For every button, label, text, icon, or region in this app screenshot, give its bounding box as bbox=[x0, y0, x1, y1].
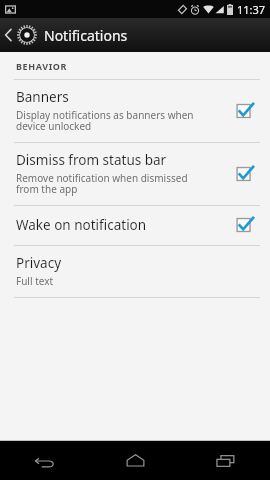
button[interactable]: Back bbox=[0, 441, 90, 480]
staticText: Banners bbox=[16, 88, 69, 106]
button[interactable]: Recent apps bbox=[180, 441, 270, 480]
staticText: Dismiss from status bar bbox=[16, 151, 167, 169]
staticText: Notifications bbox=[44, 26, 128, 45]
staticText: 11:37 bbox=[237, 2, 266, 17]
button[interactable]: Dismiss from status bar bbox=[0, 143, 270, 205]
button[interactable]: Wake on notification bbox=[0, 206, 270, 245]
staticText: Full text bbox=[16, 274, 54, 288]
button[interactable]: Home bbox=[90, 441, 180, 480]
button[interactable]: Toggle setting bbox=[234, 163, 256, 185]
staticText: Remove notification when dismissed from … bbox=[16, 171, 188, 196]
staticText: Privacy bbox=[16, 254, 62, 272]
button[interactable]: Banners bbox=[0, 80, 270, 142]
staticText: Wake on notification bbox=[16, 216, 147, 234]
button[interactable]: Toggle setting bbox=[234, 100, 256, 122]
button[interactable]: Toggle setting bbox=[234, 214, 256, 236]
button[interactable]: Privacy bbox=[0, 246, 270, 297]
staticText: Display notifications as banners when de… bbox=[16, 108, 194, 133]
button[interactable]: Back bbox=[0, 18, 270, 52]
staticText: BEHAVIOR bbox=[16, 60, 67, 72]
other: Back bbox=[4, 28, 13, 42]
